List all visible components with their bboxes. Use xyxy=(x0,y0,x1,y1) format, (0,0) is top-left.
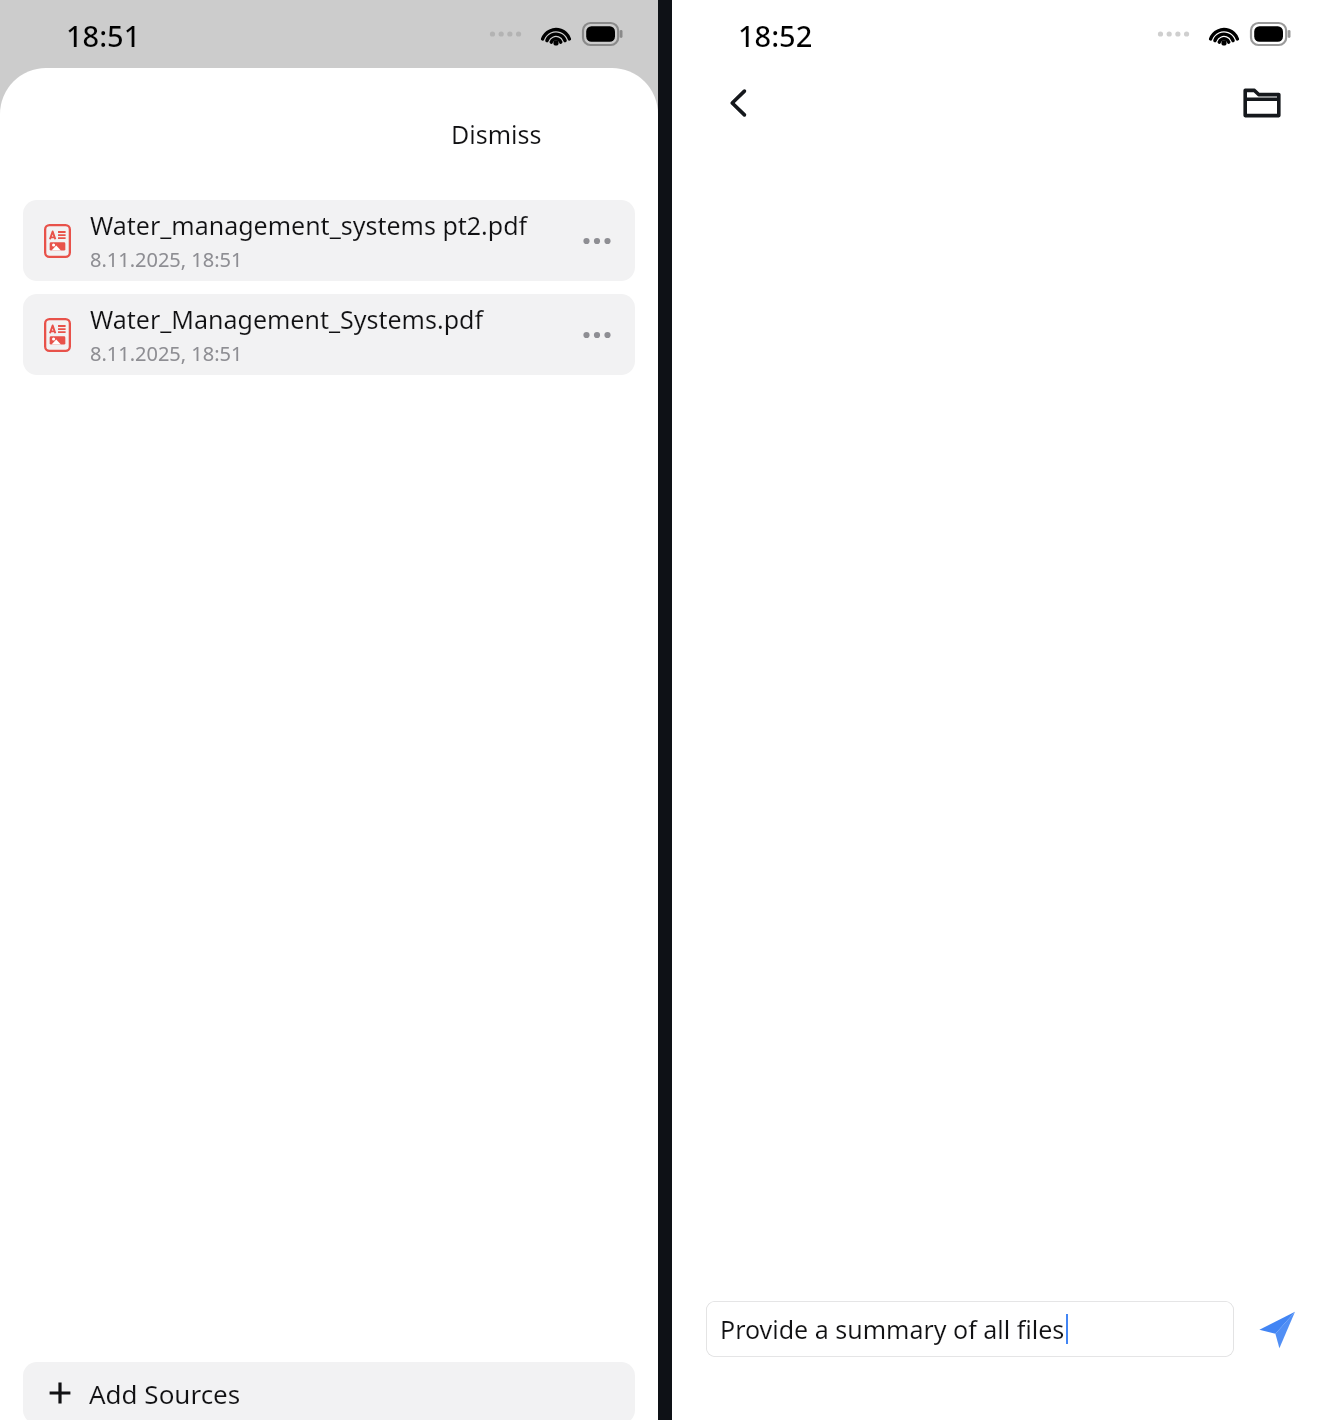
button[interactable]: Provide a summary of all files xyxy=(706,1301,1234,1357)
button[interactable]: Add Sources xyxy=(23,1362,635,1420)
staticText: 8.11.2025, 18:51 xyxy=(90,246,243,273)
button[interactable]: More options xyxy=(575,313,619,357)
staticText: Provide a summary of all files xyxy=(720,1312,1065,1346)
staticText: Water_Management_Systems.pdf xyxy=(90,302,484,336)
staticText: Water_management_systems pt2.pdf xyxy=(90,208,528,242)
button[interactable]: Send xyxy=(1248,1300,1306,1358)
staticText: Add Sources xyxy=(89,1376,241,1411)
button[interactable]: Water_Management_Systems.pdf xyxy=(23,294,635,375)
staticText: 8.11.2025, 18:51 xyxy=(90,340,243,367)
staticText: Dismiss xyxy=(451,117,542,151)
staticText: 18:51 xyxy=(66,16,141,55)
button[interactable]: Files xyxy=(1223,64,1301,142)
staticText: 18:52 xyxy=(738,16,813,55)
button[interactable]: Back xyxy=(700,64,778,142)
button[interactable]: Dismiss xyxy=(432,103,560,165)
button[interactable]: Water_management_systems pt2.pdf xyxy=(23,200,635,281)
button[interactable]: More options xyxy=(575,219,619,263)
